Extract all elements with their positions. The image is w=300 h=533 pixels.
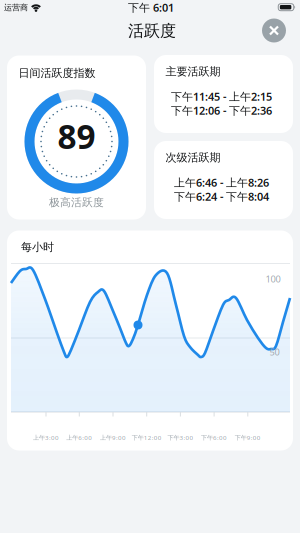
staticText: 下午6:24 - 下午8:04: [174, 189, 269, 204]
staticText: 下午12:00: [132, 433, 162, 442]
staticText: 下午 6:01: [128, 0, 174, 15]
staticText: 每小时: [21, 240, 54, 254]
staticText: 下午6:00: [201, 433, 227, 442]
staticText: 下午12:06 - 下午2:36: [171, 103, 272, 118]
staticText: 下午3:00: [167, 433, 193, 442]
staticText: 活跃度: [128, 21, 176, 41]
staticText: 极高活跃度: [49, 196, 104, 209]
staticText: 89: [57, 114, 95, 158]
staticText: 主要活跃期: [165, 64, 220, 78]
staticText: 下午9:00: [235, 433, 261, 442]
staticText: 50: [269, 346, 279, 358]
button[interactable]: 关闭: [262, 18, 286, 42]
staticText: 上午3:00: [33, 433, 59, 442]
staticText: 上午6:00: [66, 433, 92, 442]
staticText: 上午9:00: [100, 433, 126, 442]
staticText: 下午11:45 - 上午2:15: [171, 89, 272, 104]
staticText: 次级活跃期: [165, 150, 220, 164]
staticText: 上午6:46 - 上午8:26: [174, 175, 269, 190]
staticText: 100: [265, 273, 280, 285]
staticText: 运营商: [4, 2, 28, 13]
staticText: 日间活跃度指数: [18, 66, 95, 80]
